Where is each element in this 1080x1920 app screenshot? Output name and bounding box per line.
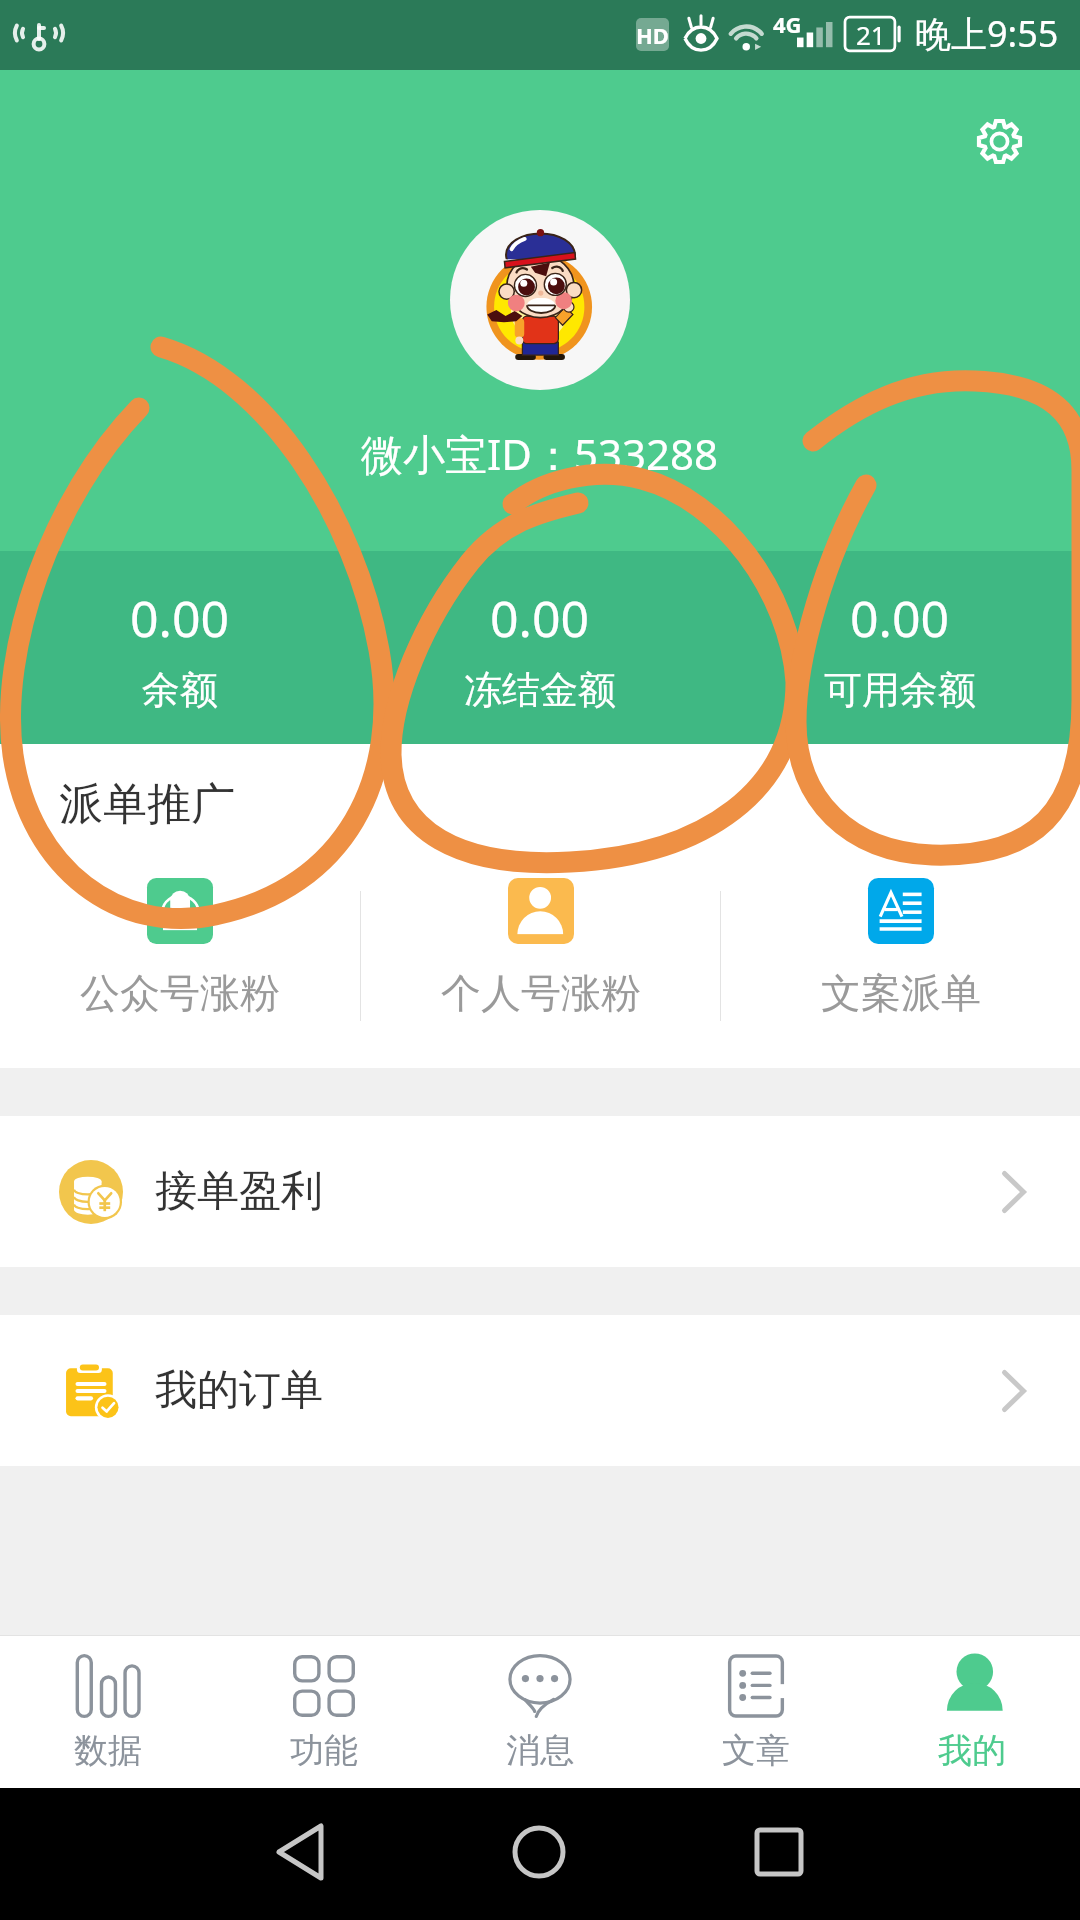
- staticText: 可用余额: [824, 666, 976, 714]
- button[interactable]: Avatar: [450, 210, 630, 390]
- button[interactable]: 数据: [0, 1636, 216, 1788]
- staticText: 21: [856, 17, 886, 52]
- button[interactable]: 功能: [216, 1636, 432, 1788]
- staticText: 我的: [938, 1729, 1006, 1772]
- staticText: 4G: [773, 9, 802, 39]
- button[interactable]: 我的: [864, 1636, 1080, 1788]
- button[interactable]: 我的订单: [0, 1315, 1080, 1466]
- button[interactable]: 公众号涨粉: [0, 868, 360, 1043]
- button[interactable]: 接单盈利: [0, 1116, 1080, 1267]
- staticText: 余额: [142, 666, 218, 714]
- staticText: 0.00: [490, 584, 590, 652]
- staticText: 公众号涨粉: [80, 968, 280, 1018]
- button[interactable]: 0.00: [720, 551, 1080, 744]
- other: System navigation: [0, 1788, 1080, 1920]
- staticText: HD: [636, 20, 669, 50]
- button[interactable]: Settings: [959, 101, 1039, 181]
- staticText: 文章: [722, 1729, 790, 1772]
- button[interactable]: 个人号涨粉: [361, 868, 720, 1043]
- staticText: 0.00: [130, 584, 230, 652]
- staticText: 派单推广: [59, 777, 235, 832]
- staticText: 冻结金额: [464, 666, 616, 714]
- staticText: 我的订单: [155, 1364, 323, 1417]
- staticText: 接单盈利: [155, 1165, 323, 1218]
- button[interactable]: 文章: [648, 1636, 864, 1788]
- button[interactable]: 0.00: [0, 551, 360, 744]
- staticText: 微小宝ID：533288: [361, 425, 719, 482]
- staticText: 文案派单: [821, 968, 981, 1018]
- button[interactable]: 文案派单: [721, 868, 1080, 1043]
- staticText: 个人号涨粉: [441, 968, 641, 1018]
- button[interactable]: 消息: [432, 1636, 648, 1788]
- staticText: 功能: [290, 1729, 358, 1772]
- staticText: 数据: [74, 1729, 142, 1772]
- button[interactable]: 0.00: [360, 551, 720, 744]
- staticText: 消息: [506, 1729, 574, 1772]
- staticText: 0.00: [850, 584, 950, 652]
- staticText: 晚上9:55: [915, 9, 1059, 58]
